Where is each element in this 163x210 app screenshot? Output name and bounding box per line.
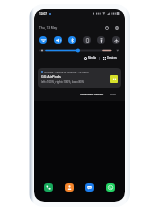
button[interactable]: Phone: [44, 183, 53, 192]
staticText: Devices: [107, 56, 117, 60]
button[interactable]: Bluetooth: [68, 36, 76, 44]
button[interactable]: [39, 48, 120, 53]
staticText: Notification settings: [80, 92, 104, 95]
button[interactable]: Contacts: [65, 183, 74, 192]
button[interactable]: Clear: [109, 91, 117, 96]
staticText: Media: [88, 56, 96, 60]
button[interactable]: Flashlight: [97, 36, 105, 44]
staticText: Thu, 13 May: [39, 26, 58, 30]
button[interactable]: Settings: [114, 25, 120, 31]
button[interactable]: Messages: [85, 183, 94, 192]
staticText: left=100%, right=100%, box=80%: [41, 80, 84, 84]
staticText: Clear: [110, 92, 116, 95]
staticText: Android · Airpod to Android · 10:18pm: [44, 70, 89, 73]
button[interactable]: WhatsApp: [106, 183, 115, 192]
button[interactable]: Notification settings: [79, 91, 105, 96]
button[interactable]: Android · Airpod to Android · 10:18pm: [38, 68, 121, 88]
staticText: 12:07: [39, 12, 47, 16]
button[interactable]: History: [104, 25, 110, 31]
staticText: GG AirPods: [41, 74, 61, 79]
button[interactable]: Sound: [54, 36, 62, 44]
button[interactable]: Devices: [102, 56, 118, 60]
button[interactable]: Media: [83, 56, 97, 60]
button[interactable]: Auto rotate: [83, 36, 91, 44]
button[interactable]: Airplane mode: [112, 36, 120, 44]
button[interactable]: Wi-Fi: [39, 36, 47, 44]
